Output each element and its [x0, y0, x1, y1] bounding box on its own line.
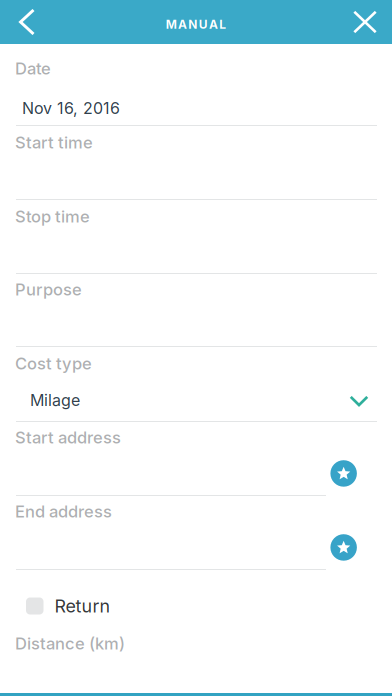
- staticText: Distance (km): [15, 633, 125, 653]
- staticText: Start time: [15, 132, 93, 152]
- button[interactable]: Choose saved address: [330, 534, 357, 561]
- button[interactable]: Return: [26, 593, 110, 619]
- button[interactable]: Back: [3, 0, 51, 44]
- staticText: Milage: [30, 390, 80, 410]
- staticText: Cost type: [15, 353, 92, 373]
- staticText: Nov 16, 2016: [22, 98, 120, 118]
- button[interactable]: Choose saved address: [330, 460, 357, 487]
- staticText: Start address: [15, 427, 121, 447]
- staticText: MANUAL: [166, 17, 226, 32]
- button[interactable]: Choose cost type: [337, 381, 381, 421]
- staticText: Return: [54, 595, 110, 617]
- staticText: Purpose: [15, 279, 82, 299]
- staticText: Date: [15, 58, 51, 78]
- button[interactable]: Close: [342, 0, 388, 44]
- staticText: Stop time: [15, 206, 90, 226]
- staticText: End address: [15, 501, 112, 521]
